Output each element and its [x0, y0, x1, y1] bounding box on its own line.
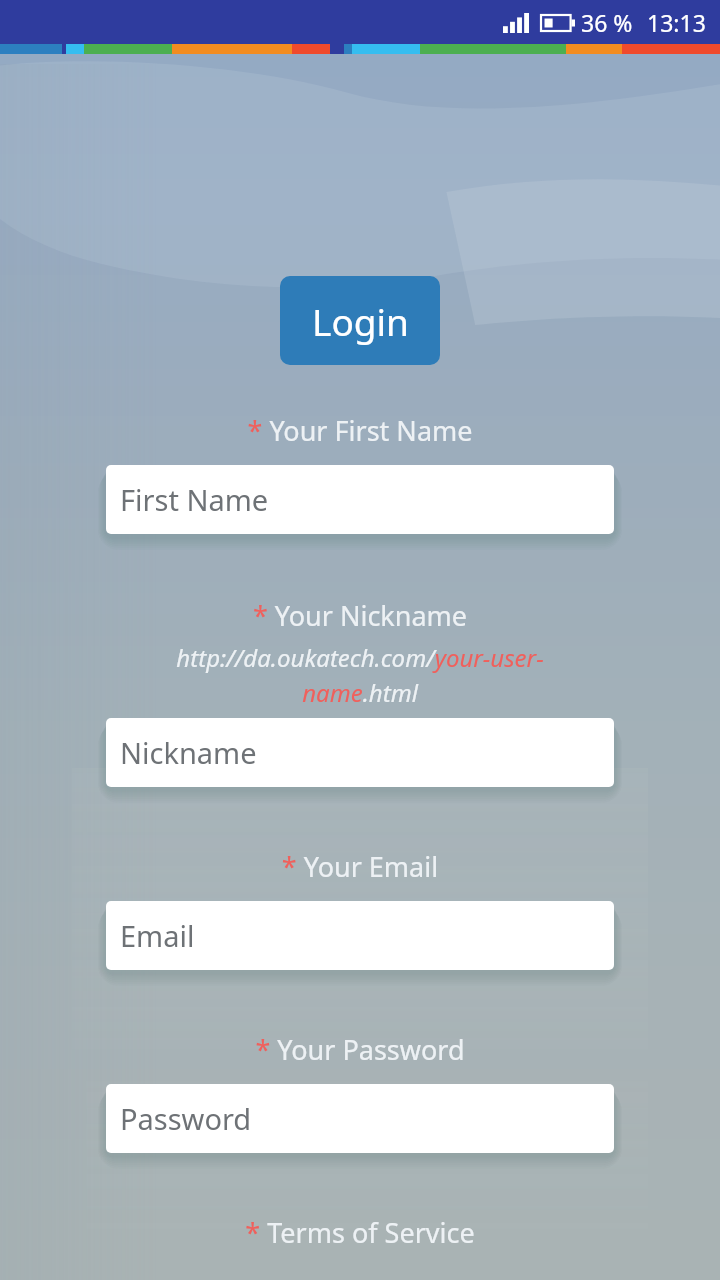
staticText: First Name — [120, 480, 269, 519]
staticText: * Your Email — [0, 848, 720, 885]
button[interactable]: First Name — [106, 465, 614, 548]
staticText: Nickname — [120, 733, 257, 772]
staticText: 13:13 — [647, 7, 706, 38]
staticText: http://da.oukatech.com/your-user-name.ht… — [165, 641, 555, 709]
staticText: 36 % — [581, 7, 633, 38]
staticText: Email — [120, 916, 195, 955]
staticText: * Your Nickname — [0, 597, 720, 634]
staticText: Login — [312, 296, 409, 346]
staticText: * Your Password — [0, 1031, 720, 1068]
staticText: Password — [120, 1099, 252, 1138]
staticText: * Terms of Service — [0, 1214, 720, 1251]
button[interactable]: Password — [106, 1084, 614, 1167]
staticText: * Your First Name — [0, 412, 720, 449]
button[interactable]: Email — [106, 901, 614, 984]
button[interactable]: Nickname — [106, 718, 614, 801]
button[interactable]: Login — [280, 276, 440, 365]
